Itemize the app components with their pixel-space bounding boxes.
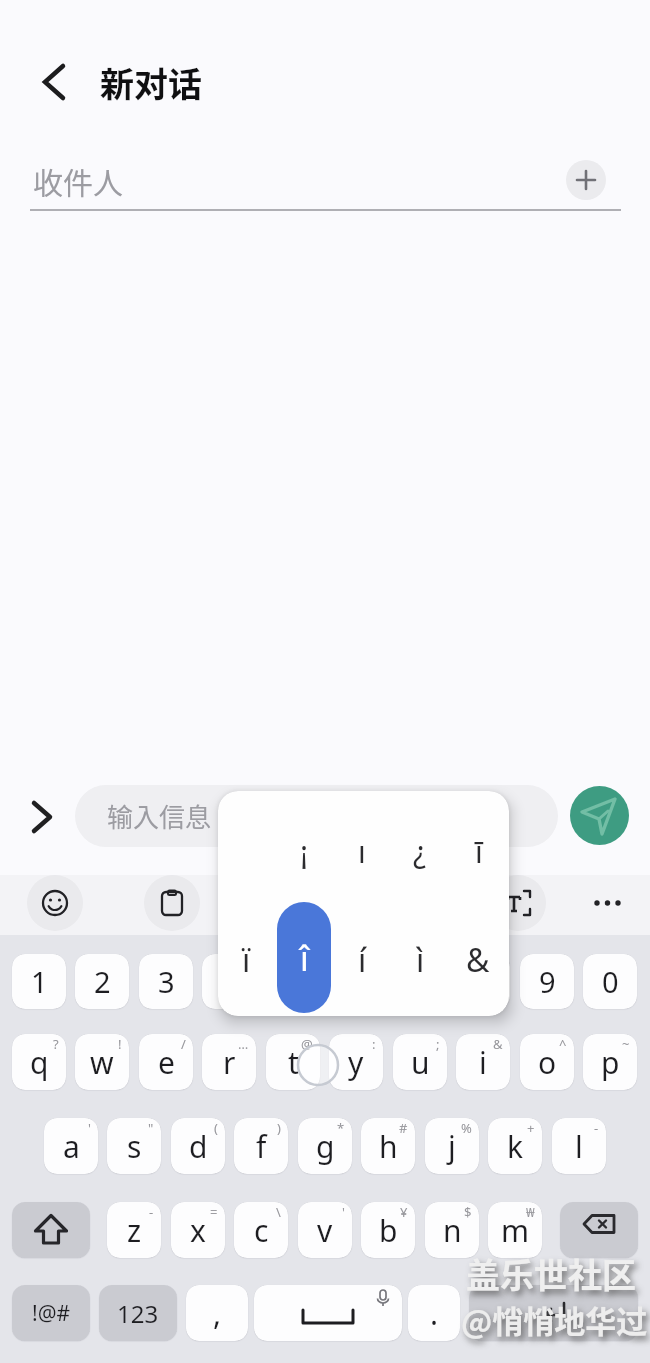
button[interactable] [566,160,606,200]
staticText: y [348,1042,364,1083]
button[interactable] [254,1285,402,1341]
button[interactable]: m [488,1202,542,1258]
staticText: h [379,1126,398,1167]
button[interactable]: h [361,1118,415,1174]
button[interactable]: u [393,1034,447,1090]
staticText: 新对话 [100,58,202,106]
button[interactable]: w [75,1034,129,1090]
staticText: ) [277,1119,281,1137]
staticText: 7 [412,962,429,1001]
staticText: e [158,1042,175,1083]
staticText: \ [276,1203,281,1221]
button[interactable]: 3 [139,954,193,1009]
button[interactable]: t [266,1034,320,1090]
button[interactable]: 5 [266,954,320,1009]
staticText: 收件人 [33,159,123,202]
button[interactable]: p [583,1034,637,1090]
button[interactable]: 输入信息 [75,785,558,847]
staticText: 0 [602,962,619,1001]
staticText: % [461,1119,472,1137]
staticText: ~ [622,1035,630,1053]
button[interactable]: 0 [583,954,637,1009]
button[interactable]: 6 [329,954,383,1009]
staticText: í [358,938,367,982]
button[interactable] [560,1202,638,1258]
button[interactable]: f [234,1118,288,1174]
staticText: = [210,1203,218,1221]
staticText: ¿ [413,831,427,872]
button[interactable] [469,1285,638,1341]
button[interactable]: , [186,1285,248,1341]
staticText: 3 [158,962,175,1001]
staticText: ı [358,831,366,872]
staticText: # [399,1119,408,1137]
staticText: g [316,1126,335,1167]
staticText: x [190,1210,206,1251]
button[interactable] [144,875,200,931]
staticText: 6 [348,962,365,1001]
staticText: / [181,1035,186,1053]
staticText: + [527,1119,535,1137]
staticText: a [63,1126,80,1167]
staticText: - [149,1203,154,1221]
button[interactable]: . [408,1285,460,1341]
staticText: w [90,1042,114,1083]
staticText: i [479,1042,487,1083]
button[interactable]: 7 [393,954,447,1009]
staticText: ¥ [400,1203,408,1221]
button[interactable]: y [329,1034,383,1090]
button[interactable] [27,875,83,931]
staticText: " [148,1119,154,1137]
staticText: 1 [31,962,48,1001]
button[interactable]: z [107,1202,161,1258]
button[interactable] [490,875,546,931]
button[interactable]: !@# [12,1285,90,1341]
staticText: 123 [117,1297,159,1330]
staticText: t [288,1042,299,1083]
button[interactable]: r [202,1034,256,1090]
staticText: : [372,1035,376,1053]
button[interactable]: 4 [202,954,256,1009]
button[interactable] [570,786,629,845]
button[interactable]: b [361,1202,415,1258]
button[interactable]: l [552,1118,606,1174]
staticText: ī [475,831,483,872]
staticText: & [466,938,490,982]
button[interactable] [26,801,58,833]
button[interactable]: 9 [520,954,574,1009]
button[interactable]: d [171,1118,225,1174]
staticText: 输入信息 [107,797,212,835]
button[interactable]: i [456,1034,510,1090]
staticText: c [254,1210,269,1251]
button[interactable] [12,1202,90,1258]
staticText: . [430,1293,439,1334]
staticText: 2 [94,962,111,1001]
staticText: 9 [539,962,556,1001]
button[interactable]: 2 [75,954,129,1009]
button[interactable]: k [488,1118,542,1174]
button[interactable]: o [520,1034,574,1090]
staticText: ! [118,1035,122,1053]
button[interactable]: î [277,902,331,1013]
staticText: z [127,1210,142,1251]
button[interactable]: v [298,1202,352,1258]
button[interactable]: x [171,1202,225,1258]
button[interactable]: 1 [12,954,66,1009]
button[interactable]: 8 [456,954,510,1009]
staticText: r [223,1042,236,1083]
button[interactable]: g [298,1118,352,1174]
staticText: k [507,1126,524,1167]
button[interactable]: j [425,1118,479,1174]
button[interactable]: n [425,1202,479,1258]
button[interactable]: c [234,1202,288,1258]
button[interactable]: e [139,1034,193,1090]
button[interactable]: 123 [99,1285,177,1341]
button[interactable]: q [12,1034,66,1090]
button[interactable]: a [44,1118,98,1174]
staticText: ' [88,1119,91,1137]
staticText: - [594,1119,599,1137]
button[interactable]: s [107,1118,161,1174]
button[interactable] [580,875,636,931]
button[interactable] [36,62,76,102]
